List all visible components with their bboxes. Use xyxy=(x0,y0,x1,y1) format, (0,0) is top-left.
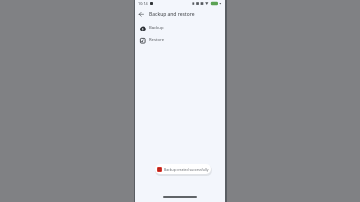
button[interactable]: Restore xyxy=(135,34,225,46)
staticText: Restore xyxy=(149,37,165,43)
staticText: 10:14 xyxy=(138,1,148,6)
button[interactable]: Backup created successfully xyxy=(155,164,211,174)
staticText: Backup and restore xyxy=(149,11,195,18)
button[interactable] xyxy=(135,8,148,21)
staticText: Backup xyxy=(149,25,164,31)
button[interactable]: Backup xyxy=(135,22,225,34)
staticText: Backup created successfully xyxy=(164,167,209,172)
